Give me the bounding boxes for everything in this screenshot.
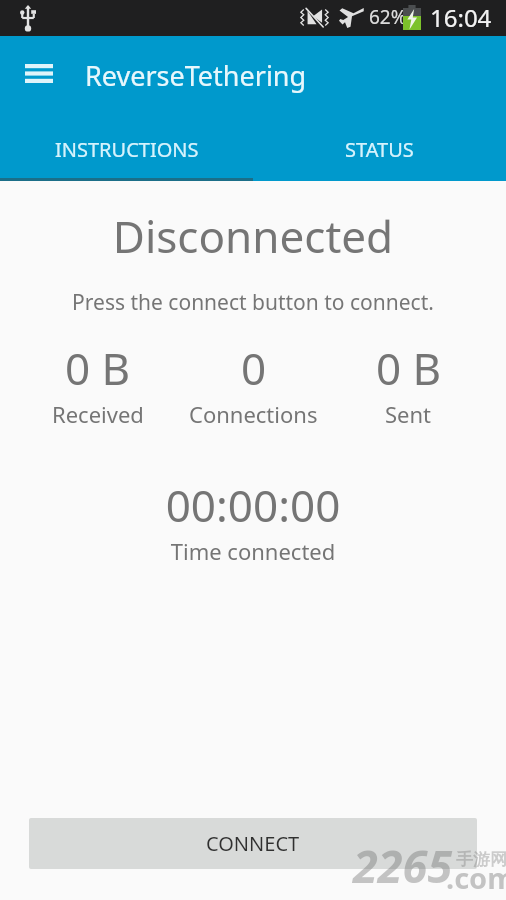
staticText: Connections [189,399,318,429]
staticText: 0 [241,338,267,398]
staticText: Time connected [0,536,506,566]
staticText: 16:04 [430,1,492,34]
staticText: Sent [385,399,432,429]
button[interactable]: CONNECT [29,818,477,869]
staticText: 00:00:00 [0,475,506,535]
staticText: Press the connect button to connect. [0,288,506,317]
staticText: 手游网 [456,849,506,870]
staticText: ReverseTethering [85,57,307,94]
button[interactable]: STATUS [253,126,506,178]
button[interactable]: INSTRUCTIONS [0,126,253,178]
staticText: CONNECT [206,830,300,857]
button[interactable]: Open navigation drawer [6,50,72,110]
staticText: 2265 [353,835,453,896]
staticText: 0 B [65,338,131,398]
staticText: .com [446,858,506,897]
staticText: 62% [369,4,407,30]
staticText: 0 B [376,338,442,398]
staticText: Disconnected [0,206,506,266]
staticText: Received [52,399,144,429]
staticText: INSTRUCTIONS [55,136,199,163]
staticText: STATUS [345,136,414,163]
